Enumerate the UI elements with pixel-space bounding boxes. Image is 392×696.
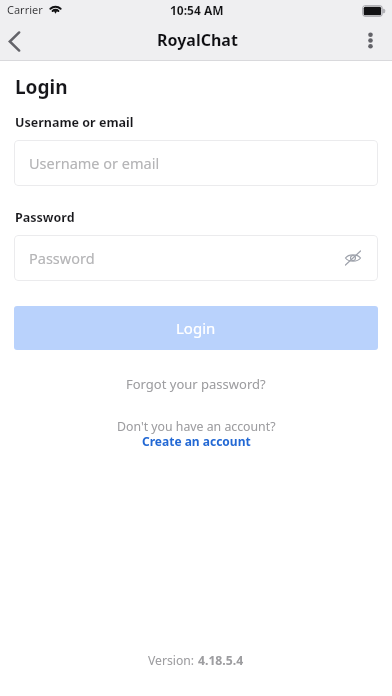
button[interactable]: Show password <box>340 245 366 271</box>
staticText: 10:54 AM <box>170 2 224 18</box>
button[interactable]: Forgot your password? <box>0 372 392 396</box>
staticText: Forgot your password? <box>126 375 266 393</box>
button[interactable]: Username or email <box>14 140 378 186</box>
staticText: Version: <box>148 652 198 669</box>
button[interactable]: Back <box>0 22 28 61</box>
staticText: Password <box>29 248 95 268</box>
button[interactable]: More options <box>348 21 392 60</box>
button[interactable]: Password <box>14 235 378 281</box>
staticText: Create an account <box>142 433 251 449</box>
staticText: Username or email <box>15 114 134 131</box>
staticText: Login <box>176 318 216 338</box>
staticText: RoyalChat <box>157 29 238 51</box>
button[interactable]: Login <box>14 306 378 350</box>
staticText: Username or email <box>29 153 160 173</box>
staticText: 4.18.5.4 <box>198 652 244 669</box>
staticText: Login <box>15 74 68 100</box>
staticText: Carrier <box>7 2 43 17</box>
staticText: Password <box>15 209 75 226</box>
staticText: Don't you have an account? <box>117 418 276 435</box>
button[interactable]: Create an account <box>0 433 392 449</box>
